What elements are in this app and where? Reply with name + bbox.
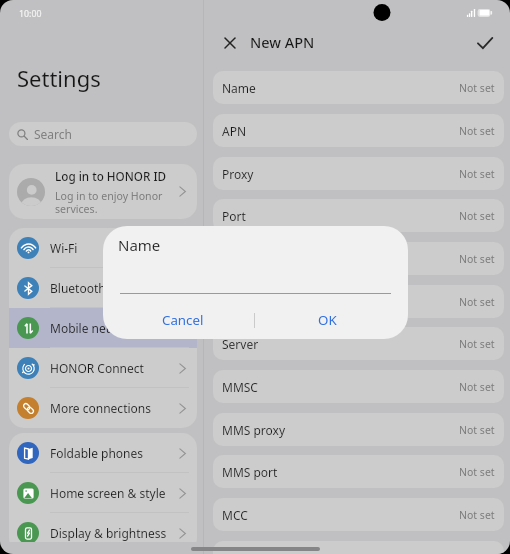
staticText: Cancel	[162, 311, 204, 329]
button[interactable]: MNC	[213, 541, 504, 554]
staticText: Foldable phones	[50, 445, 176, 461]
button[interactable]: MMS proxy	[213, 413, 504, 446]
staticText: Not set	[459, 380, 495, 394]
staticText: Home screen & style	[50, 485, 176, 501]
staticText: Server	[222, 336, 459, 352]
button[interactable]: HONOR Connect	[9, 348, 197, 388]
button[interactable]: Port	[213, 199, 504, 232]
staticText: Mobile network	[50, 320, 176, 336]
button[interactable]: MMSC	[213, 370, 504, 403]
staticText: Not set	[459, 337, 495, 351]
button[interactable]: Foldable phones	[9, 433, 197, 473]
button[interactable]: Proxy	[213, 157, 504, 190]
staticText: Not set	[459, 252, 495, 266]
staticText: Name	[222, 80, 459, 96]
button[interactable]: Username	[213, 242, 504, 275]
button[interactable]: MMS port	[213, 455, 504, 488]
staticText: Settings	[17, 63, 101, 93]
button[interactable]: Mobile network	[9, 308, 197, 348]
staticText: Not set	[459, 295, 495, 309]
staticText: Not set	[459, 124, 495, 138]
staticText: Wi-Fi	[50, 240, 176, 256]
button[interactable]: MCC	[213, 498, 504, 531]
button[interactable]: Server	[213, 327, 504, 360]
staticText: Log in to enjoy Honor services.	[55, 189, 172, 216]
button[interactable]: Save	[473, 31, 496, 54]
staticText: Password	[222, 294, 459, 310]
staticText: Not set	[459, 465, 495, 479]
staticText: Name	[118, 235, 161, 255]
staticText: MNC	[222, 550, 459, 554]
button[interactable]: Search	[9, 122, 197, 146]
staticText: APN	[222, 123, 459, 139]
staticText: Not set	[459, 167, 495, 181]
staticText: MMSC	[222, 379, 459, 395]
staticText: MMS port	[222, 464, 459, 480]
button[interactable]: Display & brightness	[9, 513, 197, 542]
button[interactable]: Name	[213, 71, 504, 104]
staticText: Username	[222, 251, 459, 267]
button[interactable]: Wi-Fi	[9, 228, 197, 268]
button[interactable]: APN	[213, 114, 504, 147]
staticText: Not set	[459, 508, 495, 522]
staticText: Not set	[459, 209, 495, 223]
button[interactable]: Log in to HONOR ID	[9, 164, 197, 219]
staticText: More connections	[50, 400, 176, 416]
button[interactable]: Bluetooth	[9, 268, 197, 308]
button[interactable]: More connections	[9, 388, 197, 428]
staticText: Search	[34, 126, 72, 142]
staticText: 10:00	[19, 8, 42, 20]
staticText: HONOR Connect	[50, 360, 176, 376]
staticText: Proxy	[222, 166, 459, 182]
button[interactable]: OK	[255, 306, 400, 334]
staticText: OK	[318, 311, 337, 329]
button[interactable]: Password	[213, 285, 504, 318]
staticText: Bluetooth	[50, 280, 176, 296]
staticText: New APN	[250, 32, 315, 52]
staticText: Not set	[459, 81, 495, 95]
button[interactable]: Home screen & style	[9, 473, 197, 513]
button[interactable]: Cancel	[111, 306, 255, 334]
staticText: Log in to HONOR ID	[55, 168, 167, 184]
staticText: Display & brightness	[50, 525, 176, 541]
button[interactable]: Close	[219, 32, 241, 54]
staticText: MMS proxy	[222, 422, 459, 438]
staticText: MCC	[222, 507, 459, 523]
staticText: Not set	[459, 423, 495, 437]
staticText: Port	[222, 208, 459, 224]
